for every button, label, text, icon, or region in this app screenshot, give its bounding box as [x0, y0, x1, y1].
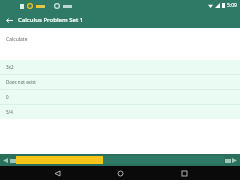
button[interactable]: 3x2: [0, 60, 240, 74]
staticText: 5:09: [227, 2, 237, 9]
staticText: 5/4: [6, 109, 13, 115]
staticText: 0: [6, 94, 9, 100]
button[interactable]: Back: [2, 13, 16, 27]
button[interactable]: Rewind: [9, 157, 16, 164]
button[interactable]: Back: [50, 166, 64, 180]
button[interactable]: 5/4: [0, 105, 240, 119]
button[interactable]: Recents: [177, 166, 191, 180]
button[interactable]: Forward: [224, 157, 231, 164]
staticText: Does not exist: [6, 79, 36, 85]
staticText: 3x2: [6, 64, 14, 70]
button[interactable]: Next: [231, 157, 238, 164]
button[interactable]: Seek: [16, 156, 224, 164]
button[interactable]: Home: [113, 166, 127, 180]
button[interactable]: Previous: [2, 157, 9, 164]
staticText: Calculate: [6, 36, 28, 43]
staticText: Calculus Problem Set 1: [18, 16, 84, 24]
button[interactable]: Does not exist: [0, 75, 240, 89]
